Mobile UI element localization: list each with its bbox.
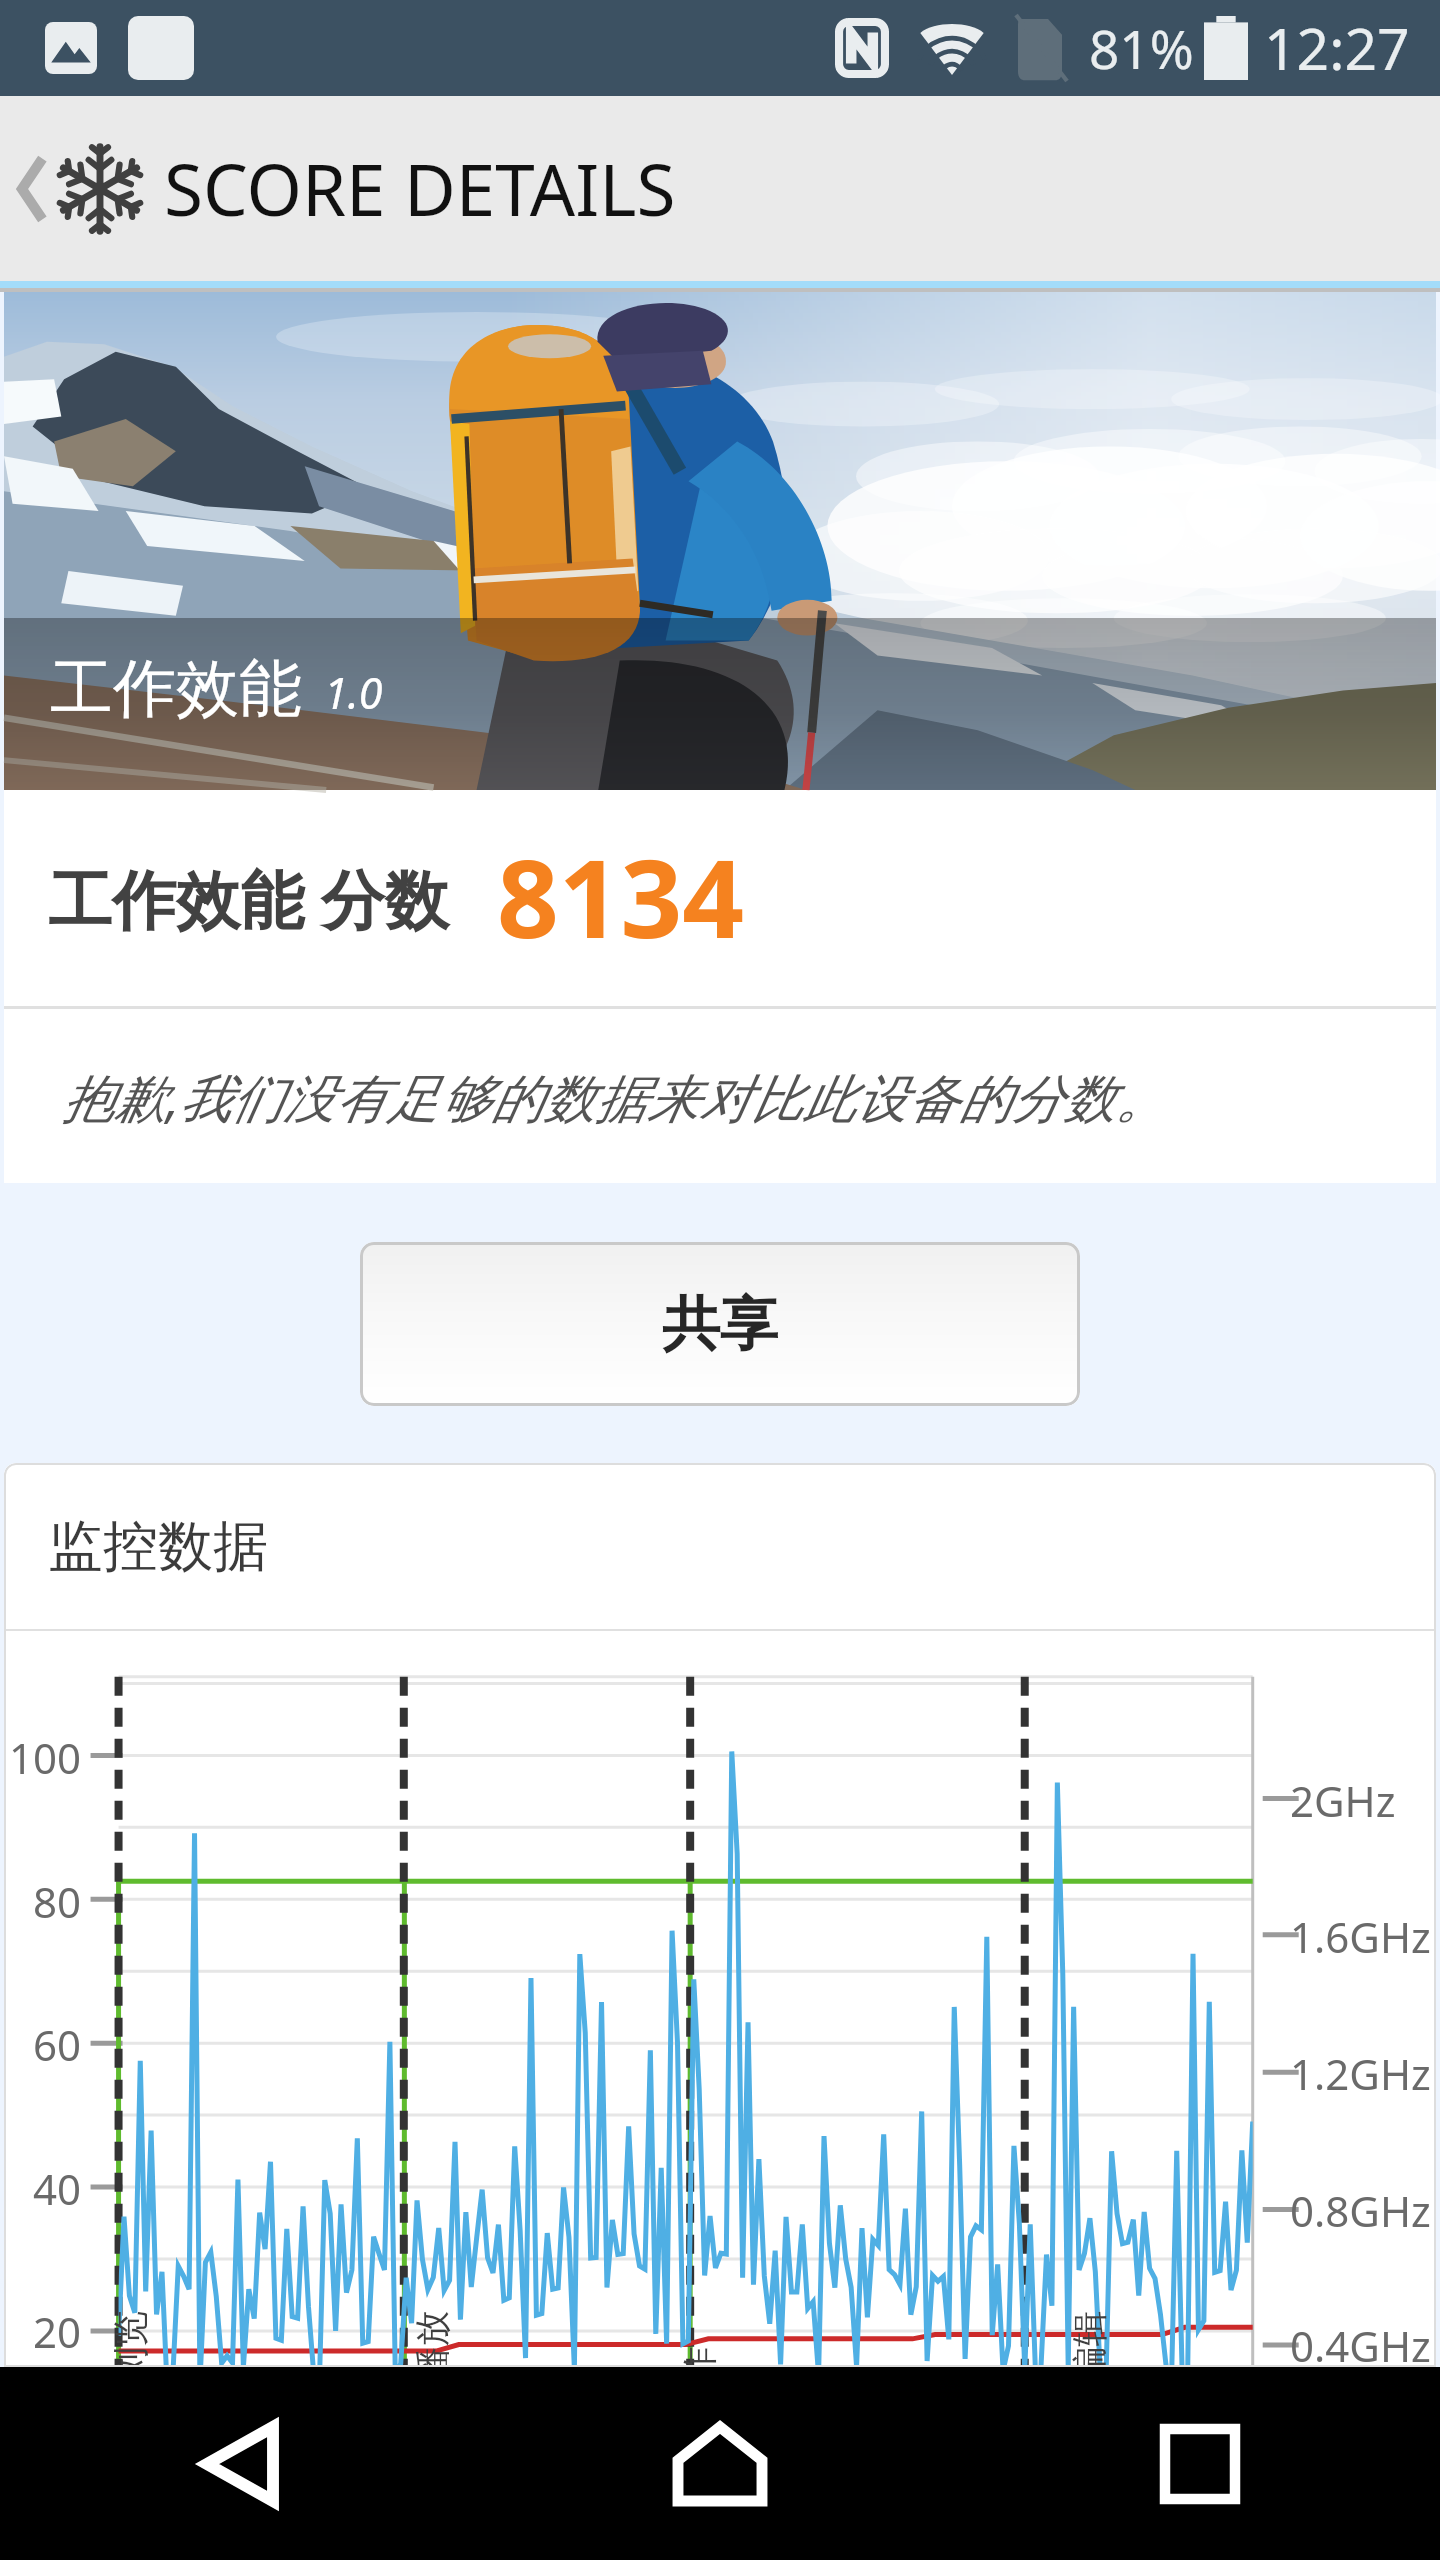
staticText: 照片编辑 <box>1066 2310 1111 2367</box>
staticText: 80 <box>33 1873 82 1930</box>
staticText: SCORE DETAILS <box>164 140 676 237</box>
staticText: 写作 <box>676 2346 721 2367</box>
staticText: 60 <box>33 2016 82 2073</box>
staticText: 20 <box>33 2303 82 2360</box>
staticText: 2GHz <box>1290 1772 1396 1829</box>
staticText: 网页浏览 <box>107 2310 152 2367</box>
staticText: 0.4GHz <box>1290 2317 1431 2367</box>
staticText: 抱歉,我们没有足够的数据来对比此设备的分数。 <box>62 1061 1168 1132</box>
staticText: 8134 <box>497 823 745 970</box>
staticText: 40 <box>33 2160 82 2217</box>
staticText: 1.0 <box>324 663 383 722</box>
button[interactable]: Home <box>625 2369 815 2559</box>
staticText: 1.2GHz <box>1290 2045 1431 2102</box>
button[interactable]: Back <box>0 96 706 281</box>
button[interactable]: Recents <box>1105 2369 1295 2559</box>
staticText: 0.8GHz <box>1290 2182 1431 2239</box>
staticText: 12:27 <box>1264 9 1410 87</box>
staticText: 监控数据 <box>48 1512 268 1581</box>
staticText: 81% <box>1089 12 1194 84</box>
staticText: 视频播放 <box>409 2310 454 2367</box>
staticText: 工作效能 <box>50 649 302 728</box>
staticText: 1.6GHz <box>1290 1908 1431 1965</box>
other: Back <box>16 151 46 227</box>
button[interactable]: 共享 <box>360 1242 1080 1406</box>
staticText: 共享 <box>662 1288 778 1361</box>
staticText: 工作效能 分数 <box>48 855 449 942</box>
staticText: 100 <box>9 1729 82 1786</box>
button[interactable]: Back <box>145 2369 335 2559</box>
